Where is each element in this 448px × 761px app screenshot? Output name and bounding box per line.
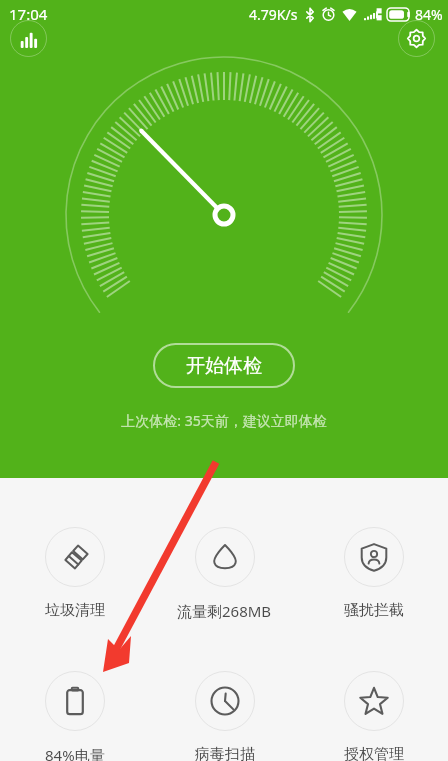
staticText: 病毒扫描 (195, 745, 255, 761)
staticText: 84%电量 (45, 745, 105, 761)
button[interactable]: Statistics (10, 20, 47, 57)
button[interactable]: 病毒扫描 (150, 671, 299, 761)
staticText: 流量剩268MB (177, 601, 272, 621)
button[interactable]: 骚扰拦截 (299, 527, 448, 620)
button[interactable]: Settings (398, 20, 435, 57)
button[interactable]: 开始体检 (153, 343, 295, 388)
button[interactable]: 流量剩268MB (150, 527, 299, 621)
staticText: 垃圾清理 (45, 601, 105, 620)
button[interactable]: 垃圾清理 (0, 527, 150, 620)
staticText: 4.79K/s (249, 5, 298, 24)
staticText: 开始体检 (186, 354, 262, 378)
staticText: 84% (415, 5, 443, 24)
staticText: 授权管理 (344, 745, 404, 761)
staticText: 17:04 (9, 4, 48, 24)
button[interactable]: 84%电量 (0, 671, 150, 761)
staticText: 骚扰拦截 (344, 601, 404, 620)
staticText: 上次体检: 35天前，建议立即体检 (121, 411, 327, 430)
button[interactable]: 授权管理 (299, 671, 448, 761)
